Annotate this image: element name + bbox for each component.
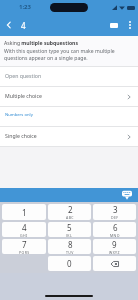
button[interactable]: More options bbox=[122, 17, 138, 33]
staticText: Asking multiple subquestions bbox=[4, 40, 78, 47]
staticText: Numbers only bbox=[5, 112, 33, 118]
staticText: 9 bbox=[112, 239, 117, 250]
staticText: With this question type you can make mul… bbox=[4, 48, 135, 62]
staticText: 6 bbox=[113, 222, 118, 233]
button[interactable]: 5 bbox=[48, 222, 91, 237]
staticText: WXYZ bbox=[109, 250, 120, 254]
staticText: TUV bbox=[66, 250, 74, 254]
staticText: 5 bbox=[67, 222, 72, 233]
button[interactable]: 9 bbox=[93, 239, 136, 254]
button[interactable]: 3 bbox=[93, 204, 136, 220]
button[interactable]: Open question bbox=[0, 67, 138, 87]
staticText: ABC bbox=[66, 215, 74, 220]
staticText: 1:23 bbox=[19, 3, 31, 11]
staticText: PQRS bbox=[19, 250, 30, 254]
button[interactable]: Multiple choice bbox=[0, 87, 138, 107]
button[interactable]: Back bbox=[0, 16, 18, 34]
staticText: Open question bbox=[5, 72, 42, 79]
staticText: 8 bbox=[68, 239, 73, 250]
staticText: 1 bbox=[22, 207, 27, 218]
button[interactable]: Single choice bbox=[0, 127, 138, 147]
staticText: DEF bbox=[111, 215, 119, 220]
staticText: 4 bbox=[21, 20, 26, 31]
staticText: GHI bbox=[20, 233, 28, 237]
staticText: 2 bbox=[68, 204, 73, 215]
button[interactable]: Preview bbox=[106, 17, 122, 33]
staticText: 7 bbox=[22, 239, 27, 250]
button[interactable]: 7 bbox=[2, 239, 46, 254]
button[interactable]: 1 bbox=[2, 204, 46, 220]
staticText: 0 bbox=[67, 258, 72, 269]
staticText: JKL bbox=[66, 233, 73, 237]
button[interactable]: 0 bbox=[48, 256, 91, 271]
staticText: 3 bbox=[113, 204, 118, 215]
button[interactable] bbox=[93, 256, 136, 271]
button[interactable]: 2 bbox=[48, 204, 91, 220]
staticText: 4 bbox=[22, 222, 27, 233]
button[interactable]: 8 bbox=[48, 239, 91, 254]
button[interactable]: 6 bbox=[93, 222, 136, 237]
button[interactable]: 4 bbox=[2, 222, 46, 237]
staticText: MNO bbox=[110, 233, 120, 237]
button[interactable]: Numbers only bbox=[0, 107, 138, 127]
button[interactable]: Hide keyboard bbox=[122, 190, 132, 200]
staticText: Multiple choice bbox=[5, 92, 42, 99]
staticText: Single choice bbox=[5, 132, 37, 139]
